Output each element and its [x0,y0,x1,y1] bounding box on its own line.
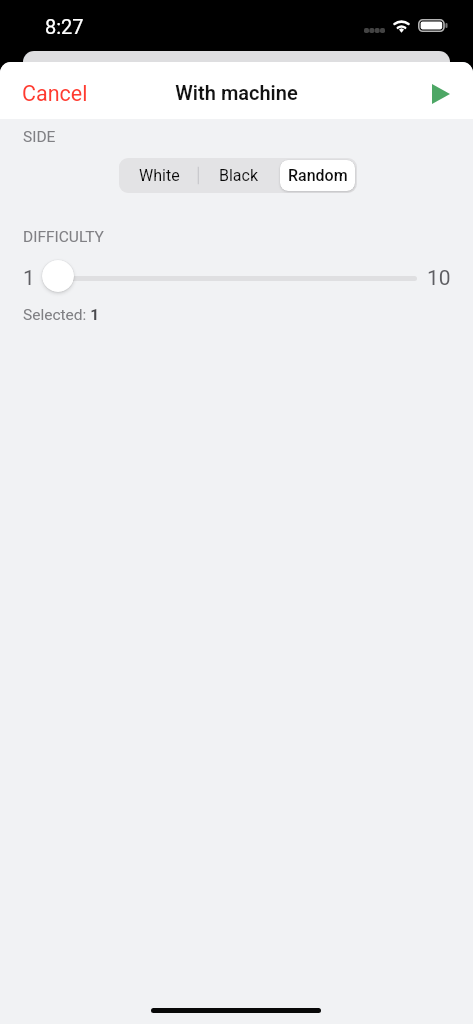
staticText: Selected: 1 [23,306,100,324]
staticText: Black [219,166,259,185]
staticText: Cancel [22,81,88,106]
staticText: White [139,166,180,185]
staticText: 10 [427,266,451,291]
button[interactable]: Difficulty level slider [42,260,74,292]
staticText: With machine [0,81,473,104]
staticText: Random [288,166,348,185]
staticText: 1 [23,266,35,291]
staticText: SIDE [23,128,56,146]
staticText: 8:27 [45,15,84,38]
button[interactable]: Start game [416,73,465,114]
button[interactable]: White [119,158,199,193]
button[interactable]: Cancel [6,75,104,112]
staticText: DIFFICULTY [23,228,104,246]
button[interactable]: Black [199,158,278,193]
button[interactable]: Random [278,158,357,193]
